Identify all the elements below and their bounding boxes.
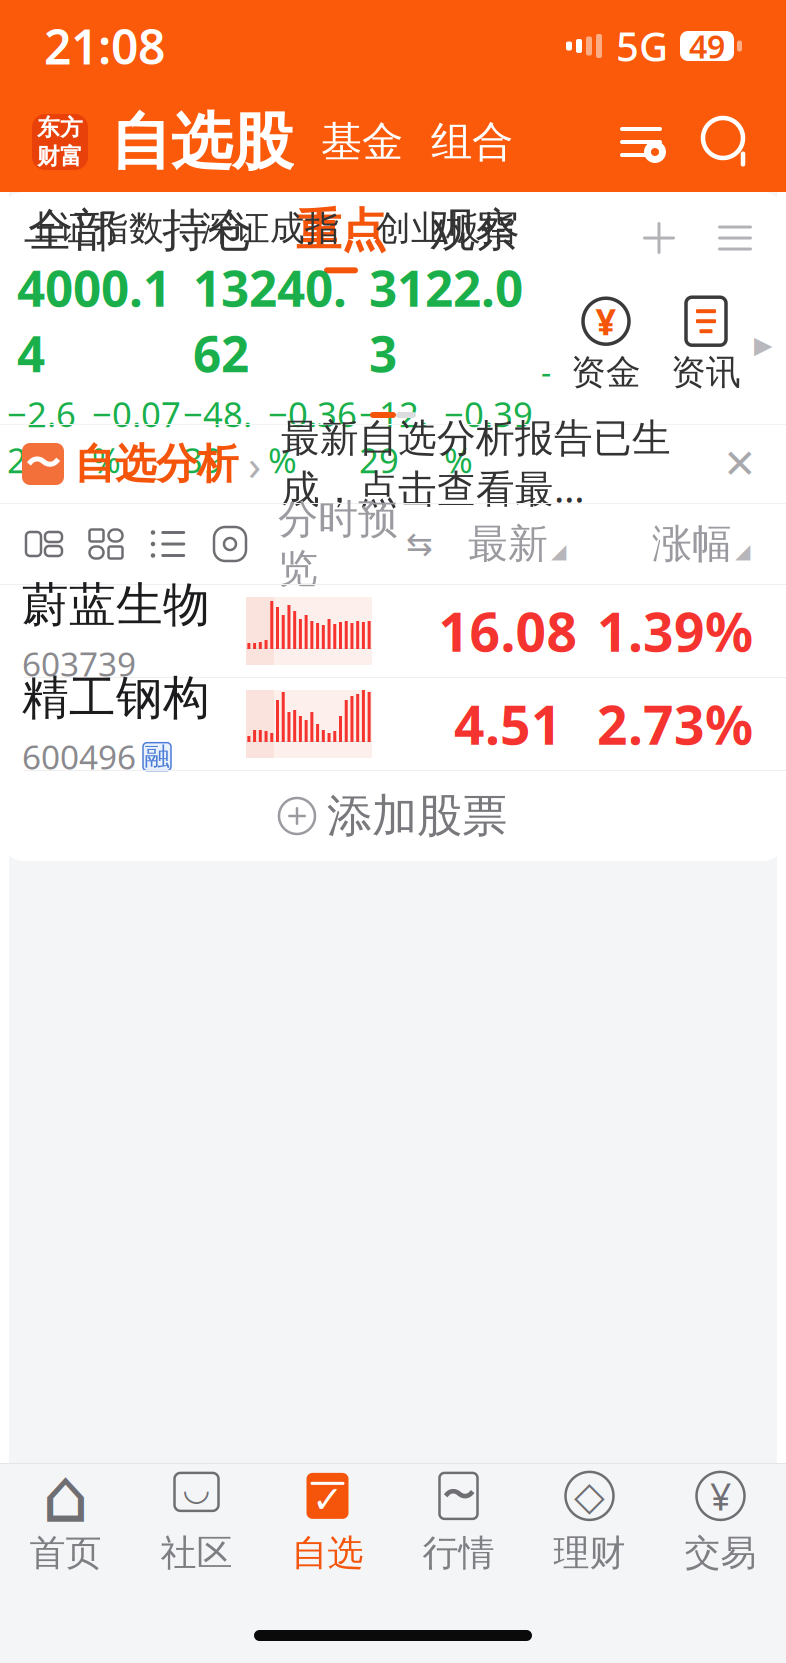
staticText: 最新自选分析报告已生成，点击查看最… <box>281 415 671 513</box>
button[interactable]: 网格视图 <box>84 524 128 564</box>
button[interactable]: 涨幅 <box>652 519 750 568</box>
staticText: 21:08 <box>44 14 165 78</box>
staticText: ✓ <box>312 1479 343 1521</box>
staticText: 社区 <box>160 1531 232 1575</box>
button[interactable]: 列表视图 <box>146 524 190 564</box>
staticText: −0.39% <box>444 391 533 483</box>
button[interactable]: ¥ <box>564 296 648 394</box>
button[interactable]: 〜 <box>393 1464 524 1582</box>
button[interactable]: 深证成指 <box>182 207 358 483</box>
staticText: 自选分析 <box>74 439 238 489</box>
button[interactable]: 资讯 <box>664 296 748 394</box>
staticText: ⌂ <box>42 1453 89 1538</box>
staticText: 添加股票 <box>327 788 507 844</box>
button[interactable]: 自选股 <box>110 104 293 180</box>
staticText: 理财 <box>553 1531 625 1575</box>
staticText: 资金 <box>571 351 641 394</box>
staticText: 16.08 <box>438 596 577 666</box>
staticText: › <box>248 436 261 492</box>
staticText: ▶ <box>754 331 772 359</box>
staticText: 资讯 <box>671 351 741 394</box>
staticText: 13240.62 <box>193 255 347 386</box>
staticText: ✕ <box>723 441 757 487</box>
staticText: ¥ <box>710 1471 731 1521</box>
button[interactable]: 持仓 <box>162 203 252 273</box>
button[interactable]: 创业板指 <box>358 207 534 483</box>
staticText: 自选 <box>291 1531 363 1575</box>
staticText: 重点 <box>296 203 386 258</box>
staticText: 603739 <box>22 641 136 686</box>
staticText: ◇ <box>574 1473 605 1519</box>
button[interactable]: ◇ <box>524 1464 655 1582</box>
staticText: ⇆ <box>406 526 433 562</box>
staticText: −2.62 <box>7 391 76 483</box>
staticText: 〜 <box>25 443 60 485</box>
staticText: 5G <box>616 19 668 72</box>
staticText: 最新 <box>468 519 548 568</box>
staticText: 〜 <box>442 1476 474 1515</box>
staticText: 600496 <box>22 734 136 779</box>
button[interactable]: ◡ <box>131 1464 262 1582</box>
staticText: 行情 <box>422 1531 494 1575</box>
button[interactable]: 添加股票 <box>0 771 786 861</box>
staticText: 精工钢构 <box>22 669 210 726</box>
staticText: 2.73% <box>597 689 753 759</box>
staticText: 分时预览 <box>278 495 398 593</box>
button[interactable]: 更多视图 <box>208 524 252 564</box>
button[interactable]: 对比视图 <box>22 524 66 564</box>
button[interactable]: 最新自选分析报告已生成，点击查看最… <box>281 415 671 513</box>
button[interactable]: 精工钢构 <box>0 678 786 770</box>
button[interactable]: ✓ <box>262 1464 393 1582</box>
staticText: 涨幅 <box>652 519 732 568</box>
staticText: 自选股 <box>110 104 293 180</box>
staticText: 东方 <box>37 114 83 141</box>
staticText: 创业板指 <box>376 207 516 250</box>
staticText: 49 <box>689 25 725 67</box>
staticText: 蔚蓝生物 <box>22 576 210 633</box>
button[interactable]: 全部 <box>28 203 118 273</box>
button[interactable]: 分组管理 <box>712 215 758 261</box>
staticText: 组合 <box>431 117 513 167</box>
button[interactable]: 关闭 <box>716 440 764 488</box>
button[interactable]: ¥ <box>655 1464 786 1582</box>
button[interactable]: 搜索 <box>700 115 754 169</box>
staticText: 持仓 <box>162 203 252 258</box>
button[interactable]: 观察 <box>430 203 520 273</box>
staticText: −48.39 <box>183 391 252 483</box>
staticText: 3122.03 <box>369 255 523 386</box>
staticText: 融 <box>144 741 169 772</box>
staticText: 1.39% <box>597 596 753 666</box>
button[interactable]: ⌂ <box>0 1464 131 1582</box>
button[interactable]: 上证指数 <box>6 207 182 483</box>
staticText: 4.51 <box>454 689 562 759</box>
button[interactable]: 重点 <box>296 203 386 273</box>
staticText: 交易 <box>684 1531 756 1575</box>
button[interactable]: 添加分组 <box>636 215 682 261</box>
staticText: - <box>541 351 551 393</box>
button[interactable]: 组合 <box>431 117 513 167</box>
staticText: 首页 <box>29 1531 101 1575</box>
staticText: 4000.14 <box>17 255 171 386</box>
button[interactable]: 列表设置 <box>614 115 668 169</box>
staticText: −12.29 <box>359 391 428 483</box>
staticText: 观察 <box>430 203 520 258</box>
staticText: ◡ <box>184 1471 209 1507</box>
staticText: ◢ <box>551 540 566 562</box>
button[interactable]: 〜 <box>22 436 261 492</box>
staticText: ◢ <box>735 540 750 562</box>
staticText: 深证成指 <box>200 207 340 250</box>
staticText: −0.07% <box>92 391 181 483</box>
staticText: 全部 <box>28 203 118 258</box>
button[interactable]: 分时预览 <box>278 495 433 593</box>
button[interactable]: 蔚蓝生物 <box>0 585 786 677</box>
staticText: 财富 <box>37 142 83 170</box>
button[interactable]: 基金 <box>321 117 403 167</box>
button[interactable]: 最新 <box>468 519 566 568</box>
staticText: −0.36% <box>268 391 357 483</box>
button[interactable]: 东方财富 <box>32 114 88 170</box>
staticText: 基金 <box>321 117 403 167</box>
staticText: 上证指数 <box>24 207 164 250</box>
staticText: ¥ <box>595 297 616 345</box>
